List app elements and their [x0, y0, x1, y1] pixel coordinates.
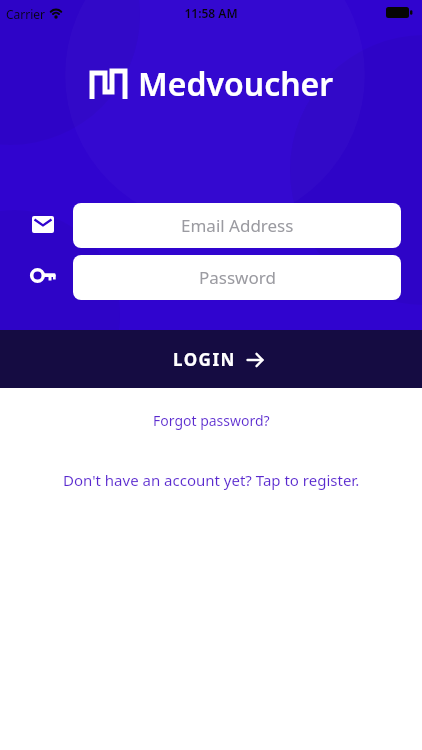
staticText: Email Address	[181, 214, 294, 237]
staticText: LOGIN	[173, 348, 236, 371]
button[interactable]: Forgot password?	[0, 406, 422, 434]
staticText: Don't have an account yet? Tap to regist…	[63, 470, 360, 490]
staticText: Medvoucher	[138, 62, 334, 106]
staticText: Forgot password?	[153, 411, 270, 430]
button[interactable]: Password	[73, 255, 401, 300]
staticText: 11:58 AM	[0, 5, 422, 21]
staticText: Password	[199, 266, 276, 289]
button[interactable]: Don't have an account yet? Tap to regist…	[0, 466, 422, 494]
button[interactable]: LOGIN	[0, 330, 422, 388]
button[interactable]: Email Address	[73, 203, 401, 248]
staticText: Carrier	[6, 6, 46, 22]
